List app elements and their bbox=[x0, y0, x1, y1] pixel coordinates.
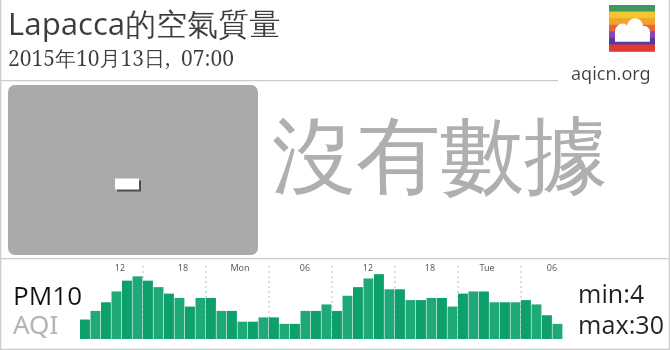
staticText: 12 bbox=[108, 261, 132, 273]
staticText: max:30 bbox=[578, 307, 664, 341]
staticText: Tue bbox=[475, 261, 499, 273]
staticText: min:4 bbox=[578, 276, 645, 310]
staticText: 06 bbox=[293, 261, 317, 273]
button[interactable]: aqicn.org bbox=[571, 61, 651, 86]
staticText: 2015年10月13日, 07:00 bbox=[8, 44, 235, 73]
staticText: Mon bbox=[228, 261, 252, 273]
button[interactable]: aqicn.org logo bbox=[609, 5, 655, 51]
staticText: AQI bbox=[13, 306, 59, 341]
staticText: 12 bbox=[356, 261, 380, 273]
staticText: 06 bbox=[540, 261, 564, 273]
staticText: 18 bbox=[418, 261, 442, 273]
button[interactable] bbox=[0, 0, 670, 350]
staticText: Lapacca的空氣質量 bbox=[8, 2, 281, 44]
staticText: 沒有數據 bbox=[272, 104, 608, 210]
staticText: 18 bbox=[171, 261, 195, 273]
staticText: PM10 bbox=[13, 277, 83, 312]
button[interactable]: Lapacca的空氣質量 bbox=[8, 2, 281, 44]
button[interactable]: Map, no data bbox=[8, 85, 258, 255]
